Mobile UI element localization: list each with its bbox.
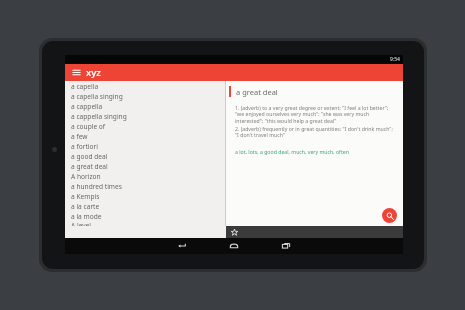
staticText: a la mode xyxy=(71,212,102,221)
button[interactable]: a la mode xyxy=(65,211,225,221)
staticText: 9:54 xyxy=(390,56,400,63)
staticText: a Kempis xyxy=(71,192,100,201)
staticText: a couple of xyxy=(71,122,106,131)
staticText: a great deal xyxy=(236,87,278,97)
staticText: 2. (adverb) frequently or in great quant… xyxy=(235,125,394,139)
button[interactable]: a great deal xyxy=(65,161,225,171)
staticText: a fortiori xyxy=(71,142,98,151)
staticText: a great deal xyxy=(71,162,108,171)
button[interactable]: a capella xyxy=(65,81,225,91)
button[interactable]: a hundred times xyxy=(65,181,225,191)
button[interactable]: a cappella singing xyxy=(65,111,225,121)
staticText: a capella xyxy=(71,82,99,91)
button[interactable]: Search xyxy=(382,208,397,223)
button[interactable]: Recent apps xyxy=(273,238,299,254)
button[interactable]: a good deal xyxy=(65,151,225,161)
button[interactable]: a la carte xyxy=(65,201,225,211)
button[interactable]: Favourites xyxy=(229,227,240,238)
button[interactable]: Open navigation menu xyxy=(70,66,83,79)
button[interactable]: Home xyxy=(221,238,247,254)
button[interactable]: A horizon xyxy=(65,171,225,181)
button[interactable]: a lot, lots, a good deal, much, very muc… xyxy=(235,148,349,155)
staticText: 1. (adverb) to a very great degree or ex… xyxy=(235,104,394,125)
staticText: a capella singing xyxy=(71,92,123,101)
staticText: a good deal xyxy=(71,152,108,161)
button[interactable]: a couple of xyxy=(65,121,225,131)
staticText: a la carte xyxy=(71,202,100,211)
button[interactable]: a Kempis xyxy=(65,191,225,201)
button[interactable]: Back xyxy=(169,238,195,254)
button[interactable]: A level xyxy=(65,221,225,226)
button[interactable]: a fortiori xyxy=(65,141,225,151)
button[interactable]: a capella singing xyxy=(65,91,225,101)
staticText: A horizon xyxy=(71,172,101,181)
staticText: a cappella singing xyxy=(71,112,127,121)
staticText: a hundred times xyxy=(71,182,122,191)
staticText: A level xyxy=(71,221,91,226)
staticText: a cappella xyxy=(71,102,103,111)
staticText: xyz xyxy=(86,66,101,79)
button[interactable]: a cappella xyxy=(65,101,225,111)
staticText: a few xyxy=(71,132,88,141)
button[interactable]: a few xyxy=(65,131,225,141)
